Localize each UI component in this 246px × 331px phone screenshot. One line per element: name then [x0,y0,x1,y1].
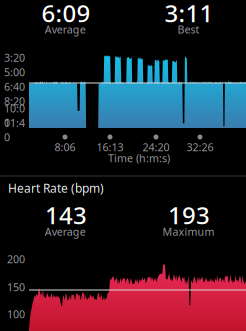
staticText: 6:40 [4,79,25,94]
staticText: 5:00 [4,65,25,79]
staticText: Best [177,22,199,36]
staticText: 32:26 [186,140,213,154]
staticText: Average [45,22,86,36]
staticText: 8:06 [54,140,75,154]
staticText: 143 [45,199,87,231]
staticText: 24:20 [142,140,169,154]
staticText: 3:20 [4,50,25,65]
staticText: Time (h:m:s) [108,151,170,165]
staticText: 8:20 [4,94,25,108]
staticText: 3:11 [164,0,213,29]
staticText: 10:00 [4,101,25,130]
staticText: Average [45,224,86,239]
staticText: 193 [168,199,210,231]
staticText: Maximum [162,224,214,239]
staticText: 16:13 [96,140,123,154]
staticText: 11:40 [4,116,25,144]
staticText: 200 [7,252,25,266]
staticText: 100 [7,307,25,321]
staticText: 150 [7,280,25,294]
staticText: Heart Rate (bpm) [8,180,104,196]
staticText: 6:09 [41,0,90,29]
